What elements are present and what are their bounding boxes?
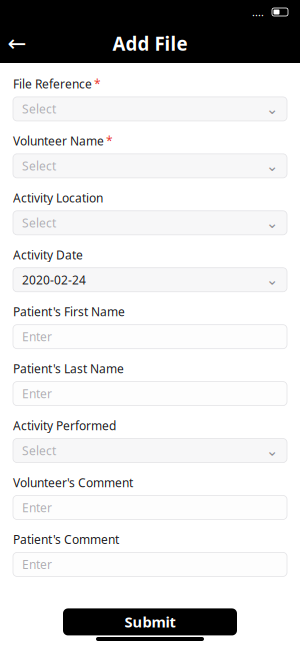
staticText: Enter	[22, 329, 52, 345]
staticText: Enter	[22, 499, 52, 515]
staticText: *	[106, 133, 113, 149]
staticText: ....	[252, 5, 264, 19]
staticText: *	[94, 76, 101, 92]
staticText: Enter	[22, 386, 52, 401]
staticText: Patient's First Name	[13, 304, 125, 320]
staticText: Activity Date	[13, 247, 83, 263]
staticText: Select	[22, 101, 56, 117]
staticText: Patient's Comment	[13, 531, 119, 547]
staticText: File Reference	[13, 76, 92, 92]
staticText: Enter	[22, 556, 52, 572]
staticText: Select	[22, 158, 56, 174]
staticText: Submit	[124, 612, 175, 632]
staticText: ⌄	[266, 271, 278, 288]
staticText: Volunteer Name	[13, 133, 104, 149]
staticText: Patient's Last Name	[13, 361, 124, 377]
staticText: ⌄	[266, 101, 278, 117]
staticText: Add File	[112, 31, 187, 56]
staticText: ⌄	[266, 214, 278, 231]
staticText: ←	[7, 31, 26, 56]
staticText: Activity Location	[13, 190, 103, 206]
staticText: Select	[22, 215, 56, 231]
staticText: Volunteer's Comment	[13, 474, 133, 490]
staticText: 2020-02-24	[22, 272, 86, 288]
staticText: ⌄	[266, 442, 278, 459]
button[interactable]: Submit	[63, 608, 237, 635]
staticText: Select	[22, 443, 56, 458]
staticText: ⌄	[266, 157, 278, 174]
button[interactable]: Back	[0, 26, 34, 60]
staticText: Activity Performed	[13, 418, 116, 433]
